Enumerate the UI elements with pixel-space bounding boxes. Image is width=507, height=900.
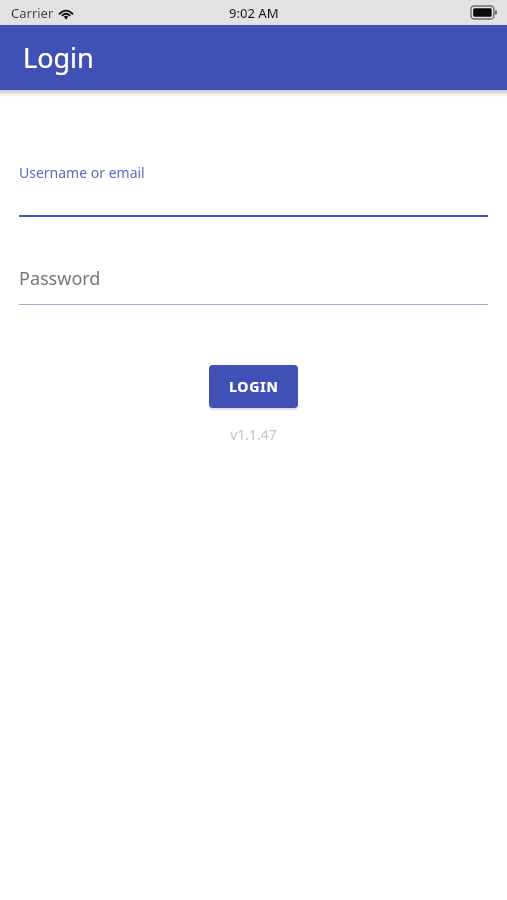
button[interactable]: LOGIN <box>209 365 298 408</box>
staticText: 9:02 AM <box>229 4 279 22</box>
staticText: Password <box>19 266 101 291</box>
staticText: v1.1.47 <box>230 425 277 444</box>
button[interactable]: Password <box>19 266 488 305</box>
button[interactable]: Username or email <box>19 163 488 217</box>
staticText: LOGIN <box>229 377 279 396</box>
staticText: Username or email <box>19 163 145 182</box>
staticText: Login <box>23 39 94 76</box>
staticText: Carrier <box>11 4 54 22</box>
